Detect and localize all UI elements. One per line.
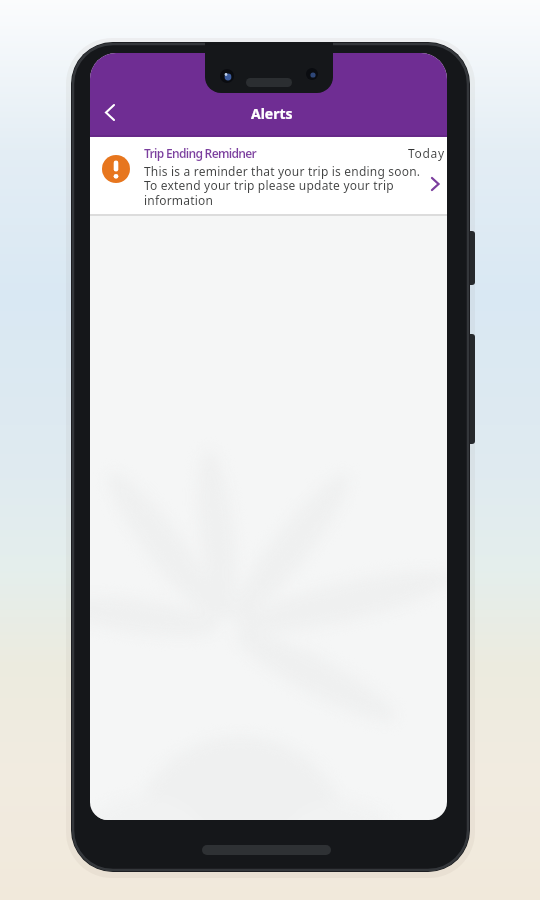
staticText: Trip Ending Remidner — [144, 145, 257, 161]
staticText: This is a reminder that your trip is end… — [144, 163, 421, 209]
button[interactable]: Trip Ending Remidner — [90, 137, 447, 214]
staticText: Alerts — [251, 104, 293, 123]
staticText: Today — [408, 145, 445, 161]
button[interactable] — [94, 95, 126, 129]
